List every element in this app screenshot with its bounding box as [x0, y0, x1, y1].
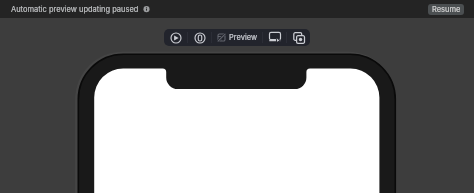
staticText: Automatic preview updating paused [11, 5, 139, 14]
button[interactable]: Info [141, 4, 152, 15]
button[interactable]: Run on device [263, 29, 286, 46]
button[interactable]: Preview [212, 29, 262, 46]
button[interactable]: Interactive preview [188, 29, 211, 46]
button[interactable]: Run preview [164, 29, 187, 46]
staticText: Preview [229, 33, 258, 42]
button[interactable]: Copy preview [287, 29, 310, 46]
staticText: Resume [432, 5, 461, 14]
button[interactable]: Resume [428, 4, 464, 15]
